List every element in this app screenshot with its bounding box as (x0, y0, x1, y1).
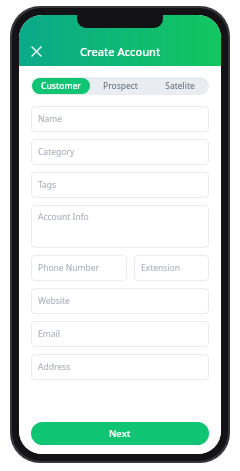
staticText: Website (38, 295, 70, 307)
staticText: Category (38, 146, 75, 158)
button[interactable]: Email (31, 321, 209, 347)
staticText: Extension (141, 262, 180, 274)
staticText: Account Info (38, 211, 89, 223)
staticText: Satelite (165, 80, 195, 92)
button[interactable]: Extension (134, 255, 209, 281)
staticText: Create Account (80, 44, 161, 59)
staticText: Tags (38, 179, 57, 191)
staticText: Phone Number (38, 262, 99, 274)
staticText: Name (38, 113, 62, 125)
staticText: Next (109, 427, 131, 440)
button[interactable]: Account Info (31, 205, 209, 248)
button[interactable]: Address (31, 354, 209, 380)
button[interactable]: Close (19, 36, 53, 66)
staticText: Address (38, 361, 71, 373)
button[interactable]: Tags (31, 172, 209, 198)
staticText: Customer (41, 80, 81, 92)
button[interactable]: Prospect (92, 78, 149, 94)
button[interactable]: Website (31, 288, 209, 314)
button[interactable]: Customer (32, 78, 90, 94)
staticText: Prospect (103, 80, 138, 92)
staticText: Email (38, 328, 60, 340)
button[interactable]: Satelite (151, 78, 208, 94)
button[interactable]: Phone Number (31, 255, 127, 281)
button[interactable]: Next (31, 422, 209, 445)
button[interactable]: Name (31, 106, 209, 132)
button[interactable]: Category (31, 139, 209, 165)
